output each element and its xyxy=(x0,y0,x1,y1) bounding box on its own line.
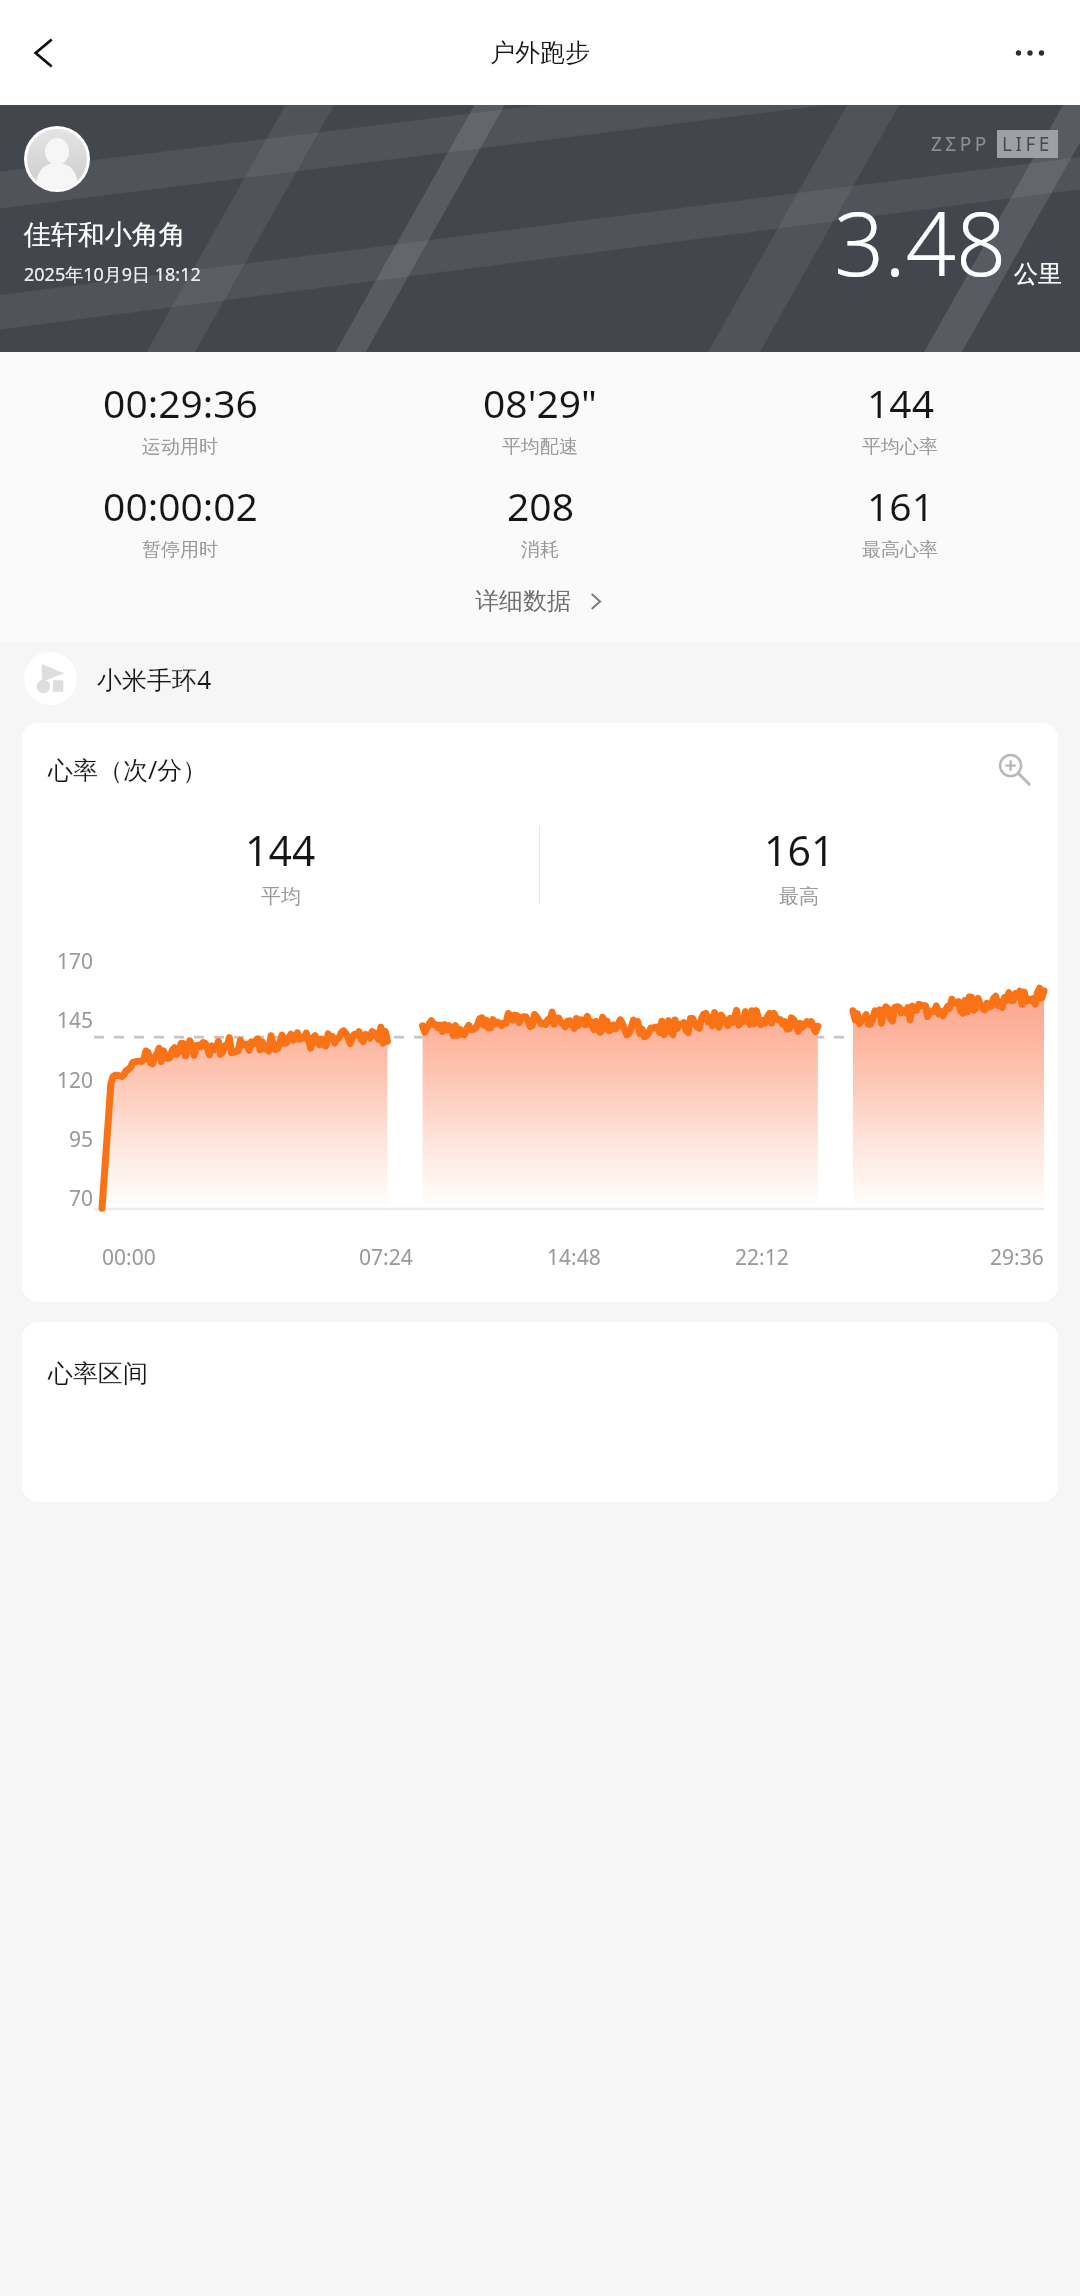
staticText: 公里 xyxy=(1014,259,1062,289)
staticText: 95 xyxy=(69,1125,94,1154)
staticText: 00:29:36 xyxy=(103,376,258,429)
button[interactable]: 小米手环4 xyxy=(0,642,1080,723)
button[interactable]: Profile avatar xyxy=(27,129,87,189)
staticText: 3.48 xyxy=(834,182,1007,302)
staticText: 29:36 xyxy=(990,1243,1044,1272)
staticText: 心率区间 xyxy=(48,1358,148,1389)
staticText: 161 xyxy=(764,822,835,878)
staticText: 运动用时 xyxy=(142,435,218,459)
staticText: 暂停用时 xyxy=(142,538,218,562)
staticText: 最高 xyxy=(779,884,819,909)
staticText: 170 xyxy=(57,947,94,976)
staticText: 120 xyxy=(57,1066,94,1095)
staticText: 144 xyxy=(245,822,316,878)
staticText: 144 xyxy=(867,376,934,429)
button[interactable]: 心率（次/分） xyxy=(22,723,1058,1302)
staticText: 145 xyxy=(57,1006,94,1035)
staticText: 2025年10月9日 18:12 xyxy=(24,262,201,287)
button[interactable]: Back xyxy=(4,13,84,93)
staticText: 00:00 xyxy=(102,1243,156,1272)
staticText: LIFE xyxy=(1002,131,1053,157)
button[interactable]: More options xyxy=(990,13,1070,93)
staticText: 70 xyxy=(69,1184,94,1213)
staticText: 心率（次/分） xyxy=(48,752,208,786)
staticText: 平均心率 xyxy=(862,435,938,459)
staticText: 08'29" xyxy=(483,376,597,429)
staticText: 161 xyxy=(867,479,934,532)
staticText: 平均 xyxy=(261,884,301,909)
button[interactable]: Zoom in chart xyxy=(990,745,1038,793)
staticText: 户外跑步 xyxy=(490,37,590,68)
staticText: 佳轩和小角角 xyxy=(24,218,186,252)
staticText: 07:24 xyxy=(359,1243,413,1272)
staticText: 最高心率 xyxy=(862,538,938,562)
staticText: 22:12 xyxy=(735,1243,789,1272)
staticText: 详细数据 xyxy=(475,586,571,616)
staticText: 消耗 xyxy=(521,538,559,562)
button[interactable]: 心率区间 xyxy=(22,1322,1058,1502)
staticText: 00:00:02 xyxy=(103,479,258,532)
staticText: ZΣPP xyxy=(931,131,990,157)
staticText: 平均配速 xyxy=(502,435,578,459)
staticText: 小米手环4 xyxy=(97,662,212,696)
button[interactable]: 详细数据 xyxy=(455,576,625,626)
staticText: 208 xyxy=(507,479,574,532)
staticText: 14:48 xyxy=(547,1243,601,1272)
